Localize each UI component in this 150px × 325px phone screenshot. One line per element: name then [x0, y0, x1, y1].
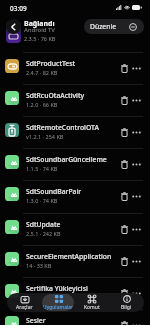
staticText: SdtRcuOtaActivity [26, 91, 116, 100]
button[interactable]: Komut [76, 294, 108, 311]
button[interactable]: More options [130, 94, 143, 107]
button[interactable]: SdtSoundbarGüncelleme [0, 148, 150, 180]
button[interactable]: Delete [118, 190, 131, 203]
staticText: 1.3.0 · 74 KB [26, 197, 58, 204]
button[interactable]: Uninstall [122, 19, 144, 34]
staticText: 14 · 12 KB [26, 294, 52, 301]
button[interactable]: SdtRcuOtaActivity [0, 84, 150, 116]
button[interactable]: More options [130, 319, 143, 325]
button[interactable]: Delete [118, 223, 131, 236]
staticText: SdtProductTest [26, 59, 116, 68]
button[interactable]: Delete [118, 94, 131, 107]
staticText: SdtSoundbarGüncelleme [26, 155, 116, 164]
staticText: 1.2.0 · 66 KB [26, 101, 58, 108]
staticText: SdtUpdate [26, 220, 116, 229]
staticText: v1.2.1 · 254 KB [26, 133, 64, 140]
button[interactable]: Delete [118, 255, 131, 268]
button[interactable]: SdtUpdate [0, 213, 150, 245]
staticText: Android TV [24, 26, 55, 34]
staticText: 14 · 33 KB [26, 262, 52, 269]
staticText: 2.5.1 · 242 KB [26, 230, 61, 237]
button[interactable]: SdtRemoteControlOTA [0, 116, 150, 148]
button[interactable]: SecureElementApplication [0, 245, 150, 277]
button[interactable]: Delete [118, 62, 131, 75]
button[interactable]: More options [130, 255, 143, 268]
button[interactable]: Delete [118, 287, 131, 300]
button[interactable]: More options [130, 62, 143, 75]
staticText: Düzenle [90, 22, 116, 31]
staticText: Sesler [26, 316, 116, 325]
staticText: 03:09 [10, 4, 27, 13]
staticText: Bilgi [121, 304, 132, 311]
staticText: Bağlandı [24, 19, 55, 29]
button[interactable]: SdtProductTest [0, 52, 150, 84]
staticText: Sertifika Yükleyicisi [26, 284, 116, 293]
staticText: SdtRemoteControlOTA [26, 123, 116, 132]
staticText: SecureElementApplication [26, 252, 116, 261]
button[interactable]: More options [130, 190, 143, 203]
staticText: 1.1.5 · 74 KB [26, 165, 58, 172]
button[interactable]: Delete [118, 126, 131, 139]
button[interactable]: More options [130, 287, 143, 300]
button[interactable]: More options [130, 223, 143, 236]
button[interactable]: More options [130, 158, 143, 171]
staticText: Uygulamalar [43, 304, 74, 311]
staticText: Komut [84, 304, 100, 311]
button[interactable]: Delete [118, 319, 131, 325]
button[interactable]: Sesler [0, 309, 150, 325]
button[interactable]: SdtSoundBarPair [0, 180, 150, 212]
button[interactable]: Araçlar [9, 294, 40, 311]
button[interactable]: Delete [118, 158, 131, 171]
button[interactable]: Bilgi [110, 294, 142, 311]
staticText: 2.4.7 · 82 KB [26, 69, 58, 76]
staticText: Araçlar [16, 304, 33, 311]
button[interactable]: Uygulamalar [42, 294, 74, 311]
button[interactable]: Sertifika Yükleyicisi [0, 277, 150, 309]
button[interactable]: Düzenle [84, 19, 122, 34]
staticText: SdtSoundBarPair [26, 187, 116, 196]
button[interactable]: More options [130, 126, 143, 139]
button[interactable]: Back [6, 19, 21, 34]
staticText: 2.3.5 · 76 KB [24, 35, 56, 42]
